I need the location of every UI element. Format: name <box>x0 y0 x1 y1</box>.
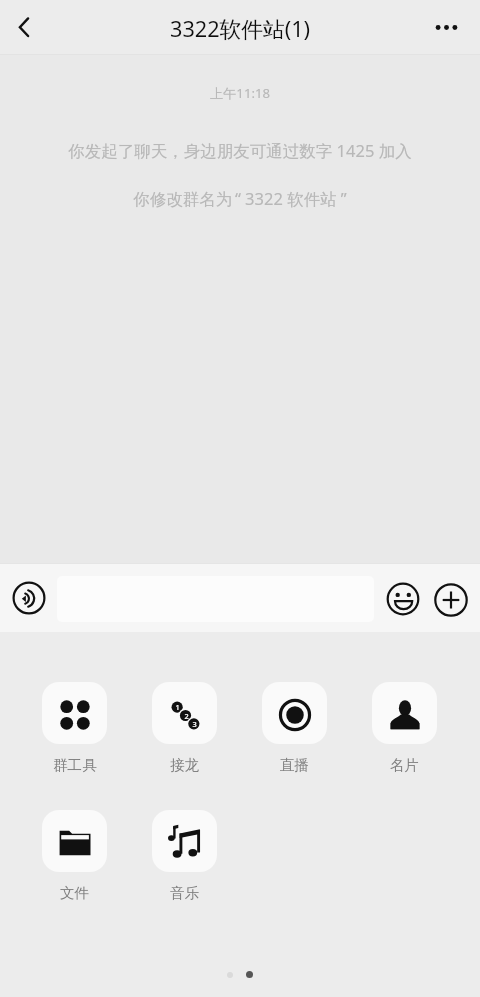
staticText: 2 <box>184 711 189 721</box>
staticText: 接龙 <box>170 756 200 774</box>
staticText: 3 <box>192 719 197 729</box>
staticText: 上午11:18 <box>0 84 480 102</box>
button[interactable]: More options <box>424 0 480 55</box>
staticText: 直播 <box>280 756 310 774</box>
button[interactable]: 直播 <box>262 682 327 774</box>
button[interactable]: Back <box>0 0 46 55</box>
staticText: 1 <box>175 702 180 712</box>
button[interactable]: Voice input <box>7 576 51 620</box>
staticText: 名片 <box>390 756 420 774</box>
button[interactable]: 名片 <box>372 682 437 774</box>
button[interactable]: Emoji <box>381 577 424 620</box>
staticText: 你修改群名为 “ 3322 软件站 ” <box>0 187 480 210</box>
staticText: 音乐 <box>170 884 200 902</box>
button[interactable]: More functions <box>429 578 472 621</box>
staticText: 3322软件站(1) <box>170 14 311 44</box>
staticText: 群工具 <box>53 756 97 774</box>
button[interactable]: 音乐 <box>152 810 217 902</box>
button[interactable]: 群工具 <box>42 682 107 774</box>
staticText: 你发起了聊天，身边朋友可通过数字 1425 加入 <box>0 139 480 162</box>
button[interactable]: 1 <box>152 682 217 774</box>
button[interactable]: 文件 <box>42 810 107 902</box>
staticText: 文件 <box>60 884 90 902</box>
